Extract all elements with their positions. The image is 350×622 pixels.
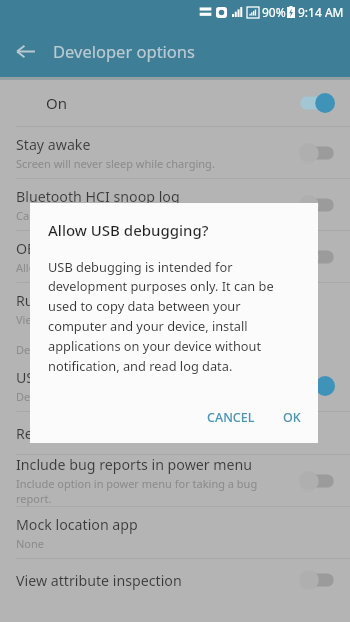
staticText: Developer options xyxy=(53,40,195,62)
staticText: View and control currently running servi… xyxy=(16,312,240,327)
staticText: Running services xyxy=(16,291,130,310)
button[interactable]: Mock location app xyxy=(0,507,350,558)
staticText: Include bug reports in power menu xyxy=(16,455,253,474)
button[interactable]: Toggle switch xyxy=(298,246,336,268)
button[interactable]: USB debugging xyxy=(0,360,350,411)
staticText: USB debugging xyxy=(16,368,120,387)
button[interactable]: OK xyxy=(274,403,310,432)
staticText: View attribute inspection xyxy=(16,571,182,590)
staticText: OK xyxy=(283,409,301,426)
staticText: Capture all bluetooth HCI packets in a f… xyxy=(16,208,230,223)
button[interactable]: Revoke USB debugging authorizations xyxy=(0,412,350,454)
staticText: Bluetooth HCI snoop log xyxy=(16,187,180,206)
staticText: 9:14 AM xyxy=(298,4,344,20)
button[interactable]: Toggle switch xyxy=(298,194,336,216)
button[interactable]: On xyxy=(0,80,350,126)
staticText: Allow USB debugging? xyxy=(48,220,209,240)
staticText: None xyxy=(16,536,45,551)
staticText: On xyxy=(46,93,298,113)
staticText: Debug mode when USB is connected xyxy=(16,389,207,404)
button[interactable]: Stay awake xyxy=(0,127,350,178)
staticText: Stay awake xyxy=(16,135,91,154)
button[interactable]: Bluetooth HCI snoop log xyxy=(0,179,350,230)
button[interactable]: Toggle switch xyxy=(298,92,336,114)
staticText: 90% xyxy=(262,4,286,20)
button[interactable]: Include bug reports in power menu xyxy=(0,455,350,506)
button[interactable]: OEM unlocking xyxy=(0,231,350,282)
staticText: Include option in power menu for taking … xyxy=(16,476,292,506)
button[interactable]: Toggle switch xyxy=(298,569,336,591)
staticText: CANCEL xyxy=(207,409,255,426)
staticText: Revoke USB debugging authorizations xyxy=(16,424,272,443)
button[interactable]: CANCEL xyxy=(198,403,264,432)
staticText: Allow the bootloader to be unlocked xyxy=(16,260,204,275)
button[interactable]: View attribute inspection xyxy=(0,559,350,601)
staticText: Screen will never sleep while charging. xyxy=(16,156,215,171)
button[interactable]: Toggle switch xyxy=(298,375,336,397)
staticText: Debugging xyxy=(16,342,74,357)
button[interactable]: Back xyxy=(6,32,44,70)
button[interactable]: Toggle switch xyxy=(298,142,336,164)
button[interactable]: Toggle switch xyxy=(298,470,336,492)
button[interactable]: Running services xyxy=(0,283,350,334)
staticText: Mock location app xyxy=(16,515,138,534)
staticText: USB debugging is intended for developmen… xyxy=(48,258,302,375)
staticText: OEM unlocking xyxy=(16,239,117,258)
